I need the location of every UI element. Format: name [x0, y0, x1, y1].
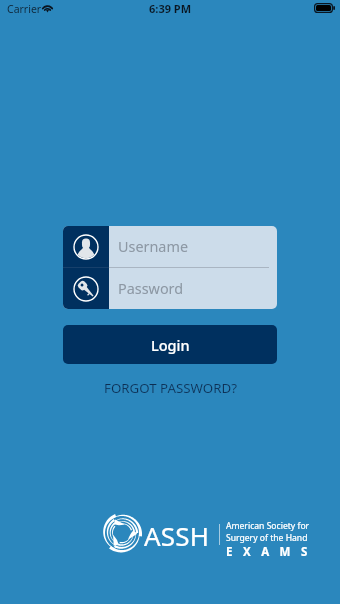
staticText: American Society for	[226, 520, 310, 532]
staticText: ASSH	[144, 518, 210, 553]
staticText: 6:39 PM	[149, 1, 192, 16]
staticText: Surgery of the Hand	[226, 532, 308, 544]
button[interactable]: FORGOT PASSWORD?	[63, 374, 277, 402]
staticText: FORGOT PASSWORD?	[104, 379, 237, 397]
staticText: Carrier	[7, 2, 42, 16]
staticText: Password	[118, 279, 184, 299]
staticText: EXAMS	[226, 544, 318, 560]
button[interactable]: Username	[63, 226, 277, 267]
staticText: Username	[118, 237, 189, 257]
button[interactable]: Password	[63, 268, 277, 309]
button[interactable]: Login	[63, 325, 277, 364]
staticText: Login	[151, 335, 190, 355]
